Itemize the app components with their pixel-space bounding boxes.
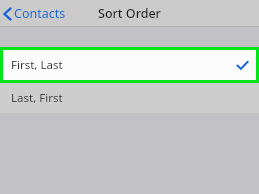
other: Back to Contacts <box>3 7 12 21</box>
staticText: First, Last <box>11 57 63 73</box>
button[interactable]: Last, First <box>0 83 259 113</box>
staticText: Last, First <box>11 90 63 106</box>
button[interactable]: Back to Contacts <box>0 0 72 27</box>
other: Selected <box>237 61 248 70</box>
staticText: Sort Order <box>98 5 161 22</box>
button[interactable]: First, Last <box>3 50 256 80</box>
staticText: Contacts <box>14 5 66 22</box>
